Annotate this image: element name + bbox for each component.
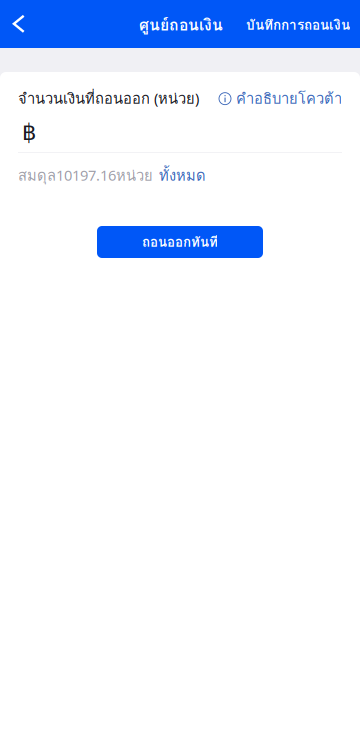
staticText: ถอนออกทันที: [142, 231, 218, 253]
button[interactable]: ทั้งหมด: [153, 164, 206, 187]
button[interactable]: ถอนออกทันที: [97, 226, 263, 258]
staticText: ศูนย์ถอนเงิน: [139, 12, 223, 37]
staticText: บันทึกการถอนเงิน: [246, 14, 350, 36]
button[interactable]: คำอธิบายโควต้า: [219, 87, 342, 110]
staticText: คำอธิบายโควต้า: [236, 87, 342, 110]
button[interactable]: บันทึกการถอนเงิน: [246, 14, 360, 36]
button[interactable]: Back: [0, 0, 38, 48]
staticText: ทั้งหมด: [159, 164, 206, 187]
staticText: สมดุล10197.16หน่วย: [18, 164, 153, 187]
staticText: จำนวนเงินที่ถอนออก (หน่วย): [18, 87, 199, 110]
staticText: ฿: [22, 119, 36, 145]
